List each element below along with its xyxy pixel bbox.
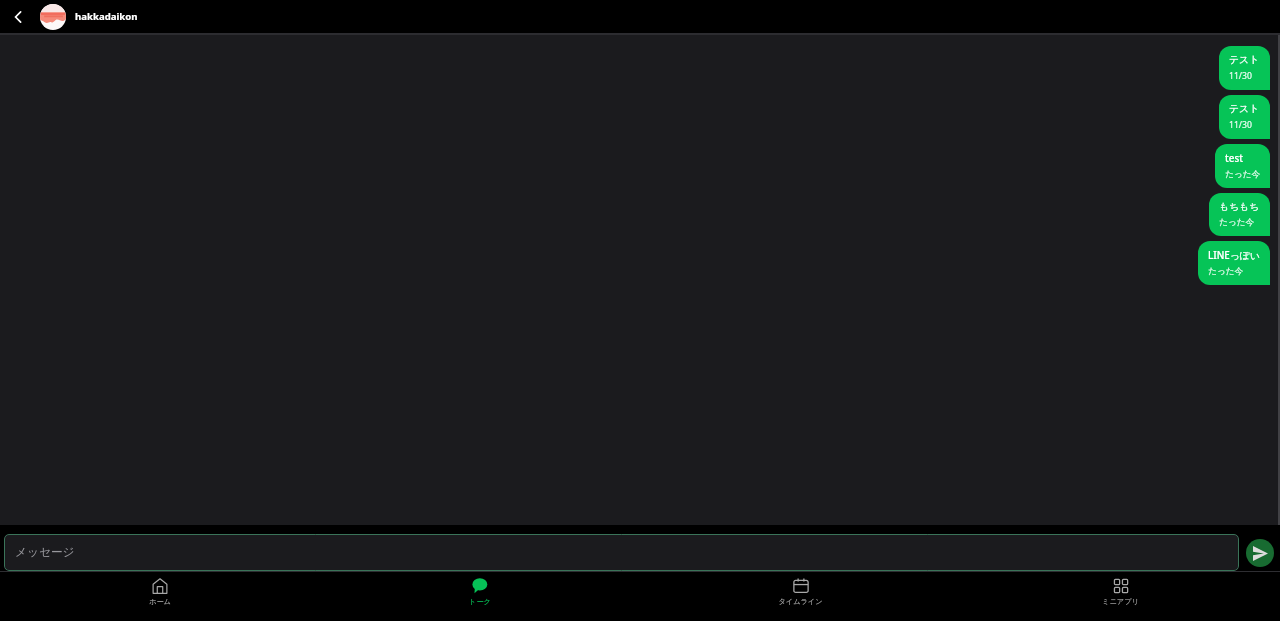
- staticText: テスト: [1229, 54, 1260, 66]
- button[interactable]: メッセージ: [4, 534, 1239, 571]
- button[interactable]: test: [1215, 144, 1270, 188]
- button[interactable]: LINEっぽい: [1198, 241, 1270, 285]
- staticText: もちもち: [1219, 201, 1260, 213]
- staticText: LINEっぽい: [1208, 249, 1260, 262]
- button[interactable]: トーク: [320, 572, 640, 621]
- staticText: 11/30: [1229, 70, 1252, 82]
- staticText: ミニアプリ: [1102, 597, 1139, 606]
- button[interactable]: ミニアプリ: [960, 572, 1280, 621]
- staticText: テスト: [1229, 103, 1260, 115]
- staticText: test: [1225, 152, 1243, 165]
- button[interactable]: もちもち: [1209, 193, 1270, 236]
- staticText: 11/30: [1229, 119, 1252, 131]
- staticText: タイムライン: [778, 597, 823, 606]
- button[interactable]: ホーム: [0, 572, 320, 621]
- button[interactable]: hakkadaikon: [40, 0, 138, 33]
- staticText: hakkadaikon: [75, 10, 138, 23]
- button[interactable]: テスト: [1219, 46, 1270, 90]
- staticText: メッセージ: [15, 545, 75, 560]
- staticText: ホーム: [149, 597, 171, 606]
- staticText: トーク: [469, 597, 491, 606]
- staticText: たった今: [1219, 217, 1254, 228]
- button[interactable]: テスト: [1219, 95, 1270, 139]
- button[interactable]: Back: [0, 0, 36, 33]
- staticText: たった今: [1225, 169, 1260, 180]
- button[interactable]: タイムライン: [640, 572, 960, 621]
- staticText: たった今: [1208, 266, 1243, 277]
- button[interactable]: Send: [1246, 539, 1274, 567]
